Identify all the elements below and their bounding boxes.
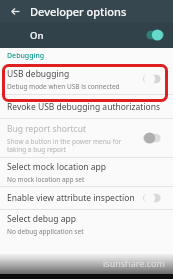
staticText: Enable view attribute inspection bbox=[7, 192, 135, 204]
button[interactable]: Toggle bbox=[143, 131, 165, 145]
staticText: Show a button in the power menu for taki… bbox=[7, 137, 122, 154]
staticText: No debug application set bbox=[7, 227, 84, 236]
staticText: Select mock location app bbox=[7, 161, 107, 173]
staticText: Select debug app bbox=[7, 213, 76, 225]
staticText: USB debugging bbox=[7, 68, 70, 80]
button[interactable]: Revoke USB debugging authorizations bbox=[0, 95, 173, 118]
button[interactable]: On bbox=[0, 22, 173, 48]
staticText: isunshare.com bbox=[103, 257, 165, 269]
staticText: Debug mode when USB is connected bbox=[7, 82, 120, 91]
button[interactable]: Toggle bbox=[142, 28, 164, 42]
button[interactable]: Toggle bbox=[143, 191, 165, 205]
button[interactable]: Toggle bbox=[143, 72, 165, 86]
button[interactable]: Bug report shortcut bbox=[0, 119, 173, 157]
button[interactable]: Back bbox=[0, 0, 30, 22]
button[interactable]: USB debugging bbox=[0, 64, 173, 94]
staticText: Developer options bbox=[30, 4, 127, 19]
staticText: On bbox=[30, 29, 44, 42]
button[interactable]: Select debug app bbox=[0, 210, 173, 238]
button[interactable]: Select mock location app bbox=[0, 158, 173, 186]
staticText: No mock location app set bbox=[7, 175, 85, 184]
staticText: Revoke USB debugging authorizations bbox=[7, 101, 161, 113]
staticText: Bug report shortcut bbox=[7, 123, 86, 135]
staticText: Debugging bbox=[7, 51, 45, 61]
button[interactable]: Enable view attribute inspection bbox=[0, 187, 173, 209]
